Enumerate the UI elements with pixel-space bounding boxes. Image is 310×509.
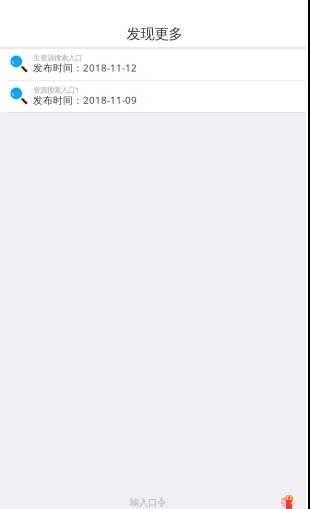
staticText: 输入口令 [130,497,166,508]
staticText: 主资源搜索入口 [33,53,82,63]
staticText: 资源搜索入口1 [33,85,79,95]
staticText: 发现更多 [126,25,182,43]
staticText: 发布时间：2018-11-12 [33,61,137,74]
button[interactable]: 客服 [281,493,306,509]
button[interactable]: 资源搜索入口1 [0,81,306,112]
button[interactable]: 主资源搜索入口 [0,49,306,80]
staticText: 发布时间：2018-11-09 [33,93,137,107]
button[interactable]: 输入口令 [0,492,306,509]
